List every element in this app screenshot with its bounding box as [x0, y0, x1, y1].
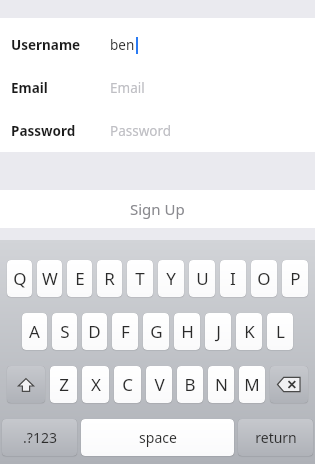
staticText: V — [154, 373, 165, 396]
staticText: T — [135, 267, 145, 290]
button[interactable]: Shift — [7, 366, 45, 403]
button[interactable]: E — [67, 260, 92, 297]
staticText: N — [215, 373, 228, 396]
staticText: B — [184, 373, 196, 396]
staticText: F — [121, 320, 130, 343]
staticText: Username — [11, 36, 81, 54]
staticText: Sign Up — [130, 199, 185, 219]
button[interactable]: Password — [0, 109, 315, 152]
button[interactable]: K — [236, 313, 262, 350]
staticText: S — [60, 320, 70, 343]
staticText: Q — [13, 267, 27, 290]
staticText: J — [216, 320, 221, 343]
button[interactable]: Backspace — [270, 366, 308, 403]
staticText: return — [255, 428, 297, 447]
staticText: H — [181, 320, 194, 343]
button[interactable]: space — [81, 419, 234, 456]
button[interactable]: L — [267, 313, 293, 350]
staticText: K — [244, 320, 255, 343]
staticText: Y — [166, 267, 176, 290]
button[interactable]: Y — [158, 260, 184, 297]
staticText: M — [244, 373, 260, 396]
button[interactable]: Z — [50, 366, 77, 403]
button[interactable]: F — [112, 313, 138, 350]
staticText: U — [196, 267, 209, 290]
staticText: I — [230, 267, 236, 290]
button[interactable]: Email — [0, 66, 315, 109]
button[interactable]: C — [114, 366, 141, 403]
staticText: Password — [11, 122, 76, 140]
button[interactable]: B — [177, 366, 203, 403]
staticText: Password — [110, 122, 172, 140]
button[interactable]: D — [82, 313, 107, 350]
button[interactable]: return — [238, 419, 313, 456]
staticText: C — [122, 373, 133, 396]
button[interactable]: J — [205, 313, 231, 350]
staticText: L — [276, 320, 285, 343]
staticText: A — [29, 320, 40, 343]
button[interactable]: R — [97, 260, 122, 297]
button[interactable]: U — [189, 260, 215, 297]
button[interactable]: O — [251, 260, 277, 297]
button[interactable]: T — [127, 260, 153, 297]
staticText: Email — [11, 79, 48, 97]
button[interactable]: V — [146, 366, 172, 403]
button[interactable]: G — [143, 313, 169, 350]
button[interactable]: .?123 — [2, 419, 77, 456]
staticText: space — [139, 428, 177, 447]
staticText: E — [75, 267, 85, 290]
staticText: G — [150, 320, 163, 343]
staticText: D — [88, 320, 101, 343]
button[interactable]: N — [208, 366, 234, 403]
staticText: R — [104, 267, 115, 290]
button[interactable]: Sign Up — [0, 190, 315, 228]
staticText: P — [290, 267, 301, 290]
staticText: ben — [110, 36, 135, 54]
button[interactable]: H — [174, 313, 200, 350]
staticText: .?123 — [23, 428, 57, 447]
button[interactable]: P — [282, 260, 308, 297]
staticText: Z — [59, 373, 69, 396]
staticText: X — [91, 373, 101, 396]
staticText: Email — [110, 79, 145, 97]
button[interactable]: A — [22, 313, 47, 350]
button[interactable]: I — [220, 260, 246, 297]
button[interactable]: W — [37, 260, 62, 297]
button[interactable]: X — [82, 366, 109, 403]
button[interactable]: Q — [7, 260, 32, 297]
staticText: W — [42, 267, 58, 290]
button[interactable]: S — [52, 313, 77, 350]
button[interactable]: Username — [0, 23, 315, 66]
staticText: O — [257, 267, 271, 290]
button[interactable]: M — [239, 366, 265, 403]
